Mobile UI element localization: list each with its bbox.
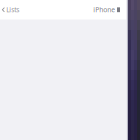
button[interactable]: Lists: [1, 0, 20, 19]
button[interactable]: iPhone: [93, 0, 125, 19]
staticText: Lists: [6, 5, 19, 14]
staticText: iPhone: [93, 5, 115, 14]
